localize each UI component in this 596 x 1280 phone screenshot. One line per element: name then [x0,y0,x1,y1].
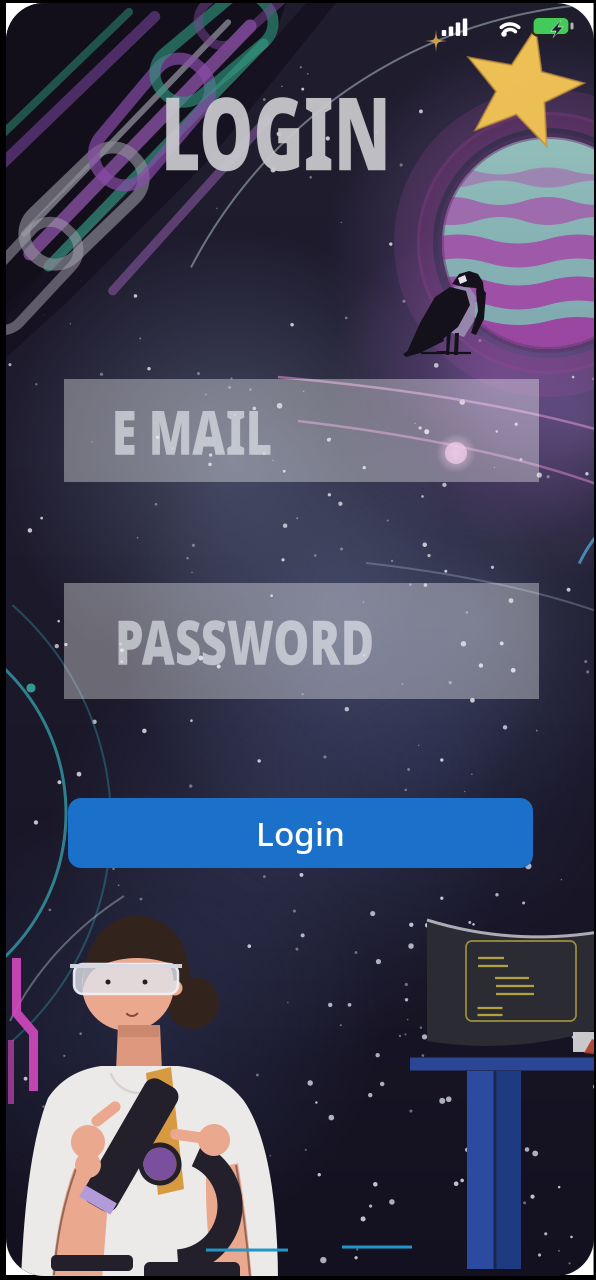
staticText: PASSWORD [69,600,419,682]
button[interactable]: E MAIL [64,379,539,482]
staticText: E MAIL [83,390,300,472]
staticText: LOGIN [104,64,447,198]
button[interactable]: PASSWORD [64,583,539,699]
button[interactable]: Login [68,798,533,868]
staticText: Login [256,811,345,855]
